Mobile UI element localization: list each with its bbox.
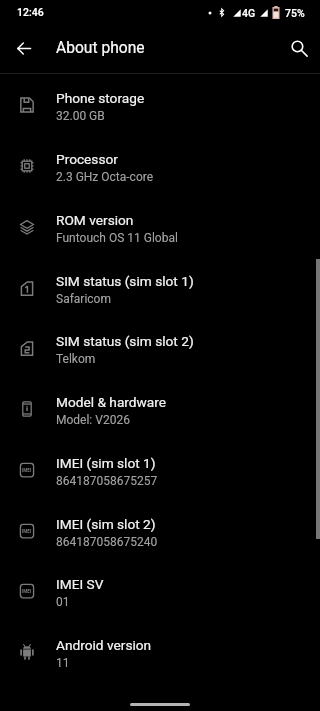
staticText: 32.00 GB [56,109,105,123]
staticText: Safaricom [56,292,111,306]
staticText: Model: V2026 [56,413,130,427]
button[interactable]: Android version [0,621,320,682]
staticText: Funtouch OS 11 Global [56,231,178,245]
staticText: 01 [56,595,70,609]
button[interactable]: SIM status (sim slot 2) [0,317,320,378]
staticText: 2.3 GHz Octa-core [56,170,154,184]
staticText: Phone storage [56,90,145,106]
button[interactable]: ROM version [0,196,320,257]
staticText: Processor [56,151,118,167]
staticText: Android version [56,637,152,653]
button[interactable]: Search [279,28,319,68]
staticText: About phone [56,39,145,57]
button[interactable]: Processor [0,135,320,196]
staticText: 864187058675240 [56,535,158,549]
button[interactable]: Phone storage [0,74,320,135]
staticText: SIM status (sim slot 1) [56,273,194,289]
staticText: IMEI [22,589,32,594]
staticText: ROM version [56,212,134,228]
button[interactable]: IMEI [0,439,320,500]
staticText: IMEI [22,468,32,473]
staticText: 4G [242,7,256,19]
staticText: Telkom [56,352,96,366]
staticText: SIM status (sim slot 2) [56,333,194,349]
button[interactable]: IMEI [0,560,320,621]
staticText: IMEI (sim slot 1) [56,455,156,471]
staticText: IMEI [22,529,32,534]
button[interactable]: Model & hardware [0,378,320,439]
button[interactable]: IMEI [0,500,320,561]
staticText: IMEI (sim slot 2) [56,516,156,532]
staticText: Model & hardware [56,394,167,410]
staticText: IMEI SV [56,576,104,592]
staticText: 11 [56,656,70,670]
staticText: 12:46 [17,6,44,18]
button[interactable]: Back [4,28,44,68]
staticText: 75% [285,7,305,19]
button[interactable]: SIM status (sim slot 1) [0,257,320,318]
staticText: 864187058675257 [56,474,158,488]
